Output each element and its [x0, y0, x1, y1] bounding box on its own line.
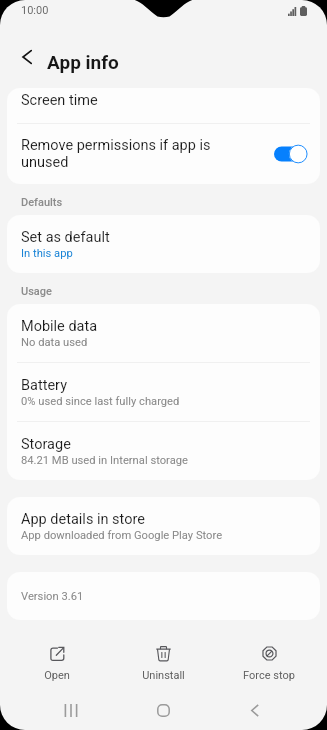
button[interactable]: Remove permissions if app is unused — [7, 124, 320, 184]
button[interactable]: Uninstall — [110, 646, 216, 682]
button[interactable]: Set as default — [7, 215, 320, 273]
staticText: Set as default — [21, 229, 110, 246]
button[interactable] — [274, 143, 307, 165]
staticText: App info — [47, 51, 119, 73]
button[interactable]: App details in store — [7, 497, 320, 555]
staticText: 10:00 — [21, 4, 49, 17]
button[interactable]: Open — [4, 646, 110, 682]
button[interactable]: Screen time — [7, 88, 320, 123]
staticText: No data used — [21, 336, 88, 349]
staticText: Storage — [21, 436, 71, 453]
button[interactable]: Back — [11, 41, 43, 73]
staticText: Force stop — [243, 669, 295, 682]
button[interactable]: Back — [235, 697, 275, 723]
button[interactable]: Storage — [7, 422, 320, 480]
button[interactable]: Recent apps — [51, 697, 91, 723]
button[interactable]: Battery — [7, 363, 320, 421]
staticText: Usage — [21, 285, 52, 298]
staticText: Remove permissions if app is unused — [21, 137, 268, 171]
button[interactable]: Mobile data — [7, 304, 320, 362]
staticText: 0% used since last fully charged — [21, 395, 180, 408]
staticText: Mobile data — [21, 318, 98, 335]
staticText: Battery — [21, 377, 67, 394]
staticText: Screen time — [21, 92, 98, 109]
button[interactable]: Home — [143, 697, 183, 723]
button[interactable]: Force stop — [216, 646, 322, 682]
staticText: App details in store — [21, 511, 145, 528]
staticText: In this app — [21, 247, 73, 260]
staticText: App downloaded from Google Play Store — [21, 529, 223, 542]
staticText: 84.21 MB used in Internal storage — [21, 454, 188, 467]
staticText: Version 3.61 — [21, 590, 84, 603]
staticText: Uninstall — [142, 669, 185, 682]
staticText: Open — [44, 669, 70, 682]
staticText: Defaults — [21, 196, 63, 209]
